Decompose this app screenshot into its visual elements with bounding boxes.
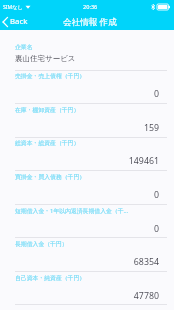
staticText: 長期借入金（千円） bbox=[15, 240, 164, 247]
staticText: 47780 bbox=[15, 290, 159, 302]
button[interactable] bbox=[0, 70, 174, 104]
staticText: 0 bbox=[15, 88, 159, 100]
button[interactable] bbox=[0, 137, 174, 171]
staticText: 149461 bbox=[15, 155, 159, 167]
staticText: 0 bbox=[15, 189, 159, 201]
staticText: 在庫・棚卸資産（千円） bbox=[15, 106, 164, 113]
button[interactable] bbox=[0, 204, 174, 238]
staticText: 自己資本・純資産（千円） bbox=[15, 274, 164, 281]
button[interactable]: Back bbox=[0, 16, 34, 27]
button[interactable] bbox=[0, 237, 174, 271]
staticText: 売掛金・売上債権（千円） bbox=[15, 72, 164, 79]
staticText: 20:36 bbox=[83, 3, 98, 11]
button[interactable] bbox=[0, 170, 174, 204]
button[interactable] bbox=[0, 103, 174, 137]
staticText: 0 bbox=[15, 223, 159, 235]
staticText: SIMなし bbox=[3, 3, 23, 10]
staticText: 買掛金・買入債務（千円） bbox=[15, 173, 164, 180]
staticText: 企業名 bbox=[15, 43, 164, 50]
staticText: 裏山住宅サービス bbox=[15, 54, 159, 63]
button[interactable] bbox=[0, 30, 174, 70]
staticText: 総資本・総資産（千円） bbox=[15, 139, 164, 146]
button[interactable] bbox=[0, 271, 174, 305]
staticText: 68354 bbox=[15, 256, 159, 268]
staticText: 短期借入金・1年以内返済長期借入金（千… bbox=[15, 207, 164, 215]
staticText: 159 bbox=[15, 122, 159, 134]
staticText: 会社情報 作成 bbox=[63, 16, 117, 28]
staticText: Back bbox=[10, 16, 28, 27]
